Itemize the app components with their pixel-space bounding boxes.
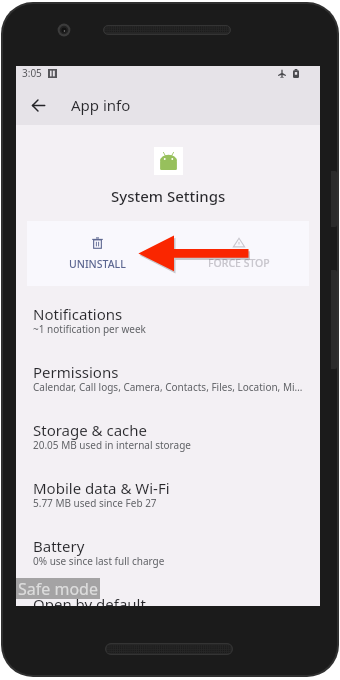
- staticText: UNINSTALL: [69, 257, 126, 271]
- button[interactable]: Storage & cache: [16, 412, 320, 470]
- staticText: 20.05 MB used in internal storage: [33, 438, 191, 452]
- staticText: Open by default: [33, 594, 146, 606]
- button[interactable]: Battery: [16, 528, 320, 586]
- button[interactable]: Mobile data & Wi-Fi: [16, 470, 320, 528]
- staticText: Permissions: [33, 362, 119, 382]
- button[interactable]: UNINSTALL: [27, 221, 168, 286]
- staticText: App info: [71, 95, 131, 115]
- staticText: 5.77 MB used since Feb 27: [33, 496, 157, 510]
- staticText: FORCE STOP: [208, 256, 270, 270]
- staticText: ~1 notification per week: [33, 322, 146, 336]
- staticText: 0% use since last full charge: [33, 554, 165, 568]
- button[interactable]: FORCE STOP: [168, 221, 309, 286]
- staticText: Mobile data & Wi-Fi: [33, 478, 170, 498]
- staticText: 3:05: [22, 66, 42, 80]
- button[interactable]: Open by default: [16, 586, 320, 606]
- staticText: Safe mode: [18, 578, 98, 599]
- button[interactable]: Notifications: [16, 296, 320, 354]
- staticText: System Settings: [111, 186, 226, 206]
- staticText: Storage & cache: [33, 420, 148, 440]
- button[interactable]: Back: [25, 92, 51, 118]
- staticText: Calendar, Call logs, Camera, Contacts, F…: [33, 380, 303, 394]
- staticText: Notifications: [33, 304, 123, 324]
- staticText: Battery: [33, 536, 85, 556]
- button[interactable]: Permissions: [16, 354, 320, 412]
